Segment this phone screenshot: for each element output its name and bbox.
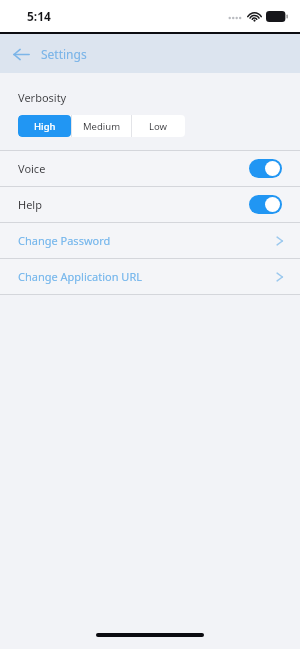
staticText: Change Application URL <box>18 269 143 284</box>
button[interactable]: Medium <box>72 115 131 137</box>
staticText: Help <box>18 197 42 212</box>
button[interactable]: Help toggle, on <box>249 195 282 214</box>
staticText: Settings <box>41 46 87 62</box>
button[interactable]: Voice toggle, on <box>249 159 282 178</box>
button[interactable]: Change Password <box>0 223 300 258</box>
staticText: Voice <box>18 161 46 176</box>
staticText: Verbosity <box>18 90 67 105</box>
staticText: Medium <box>83 120 121 133</box>
button[interactable]: High <box>18 115 71 137</box>
staticText: Low <box>149 120 168 133</box>
button[interactable]: Voice <box>0 151 300 186</box>
staticText: High <box>34 120 56 133</box>
staticText: 5:14 <box>27 8 51 24</box>
button[interactable]: Back <box>5 38 37 70</box>
staticText: Change Password <box>18 233 111 248</box>
button[interactable]: Help <box>0 187 300 222</box>
button[interactable]: Change Application URL <box>0 259 300 294</box>
button[interactable]: Low <box>132 115 185 137</box>
